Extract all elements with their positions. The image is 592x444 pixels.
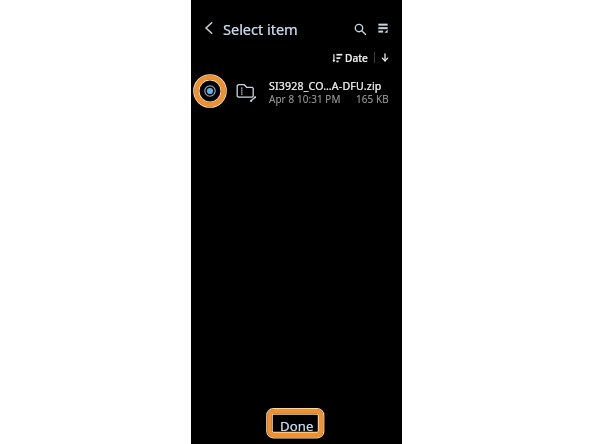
other: Selected	[188, 69, 232, 111]
button[interactable]: Search	[346, 15, 372, 41]
staticText: 165 KB	[356, 92, 389, 105]
button[interactable]: Selected	[191, 70, 402, 112]
staticText: Date	[345, 51, 368, 65]
staticText: SI3928_CO…A-DFU.zip	[269, 79, 382, 93]
staticText: Apr 8 10:31 PM	[269, 92, 341, 105]
button[interactable]: More options	[370, 15, 396, 41]
button[interactable]: Select item	[223, 19, 298, 39]
staticText: Select item	[223, 19, 298, 39]
button[interactable]: Date	[345, 51, 368, 65]
button[interactable]: Sort direction descending	[374, 47, 396, 69]
button[interactable]: Navigate up	[197, 16, 221, 40]
button[interactable]: Sort by	[327, 47, 349, 69]
staticText: Done	[280, 417, 314, 435]
button[interactable]: Done	[262, 404, 329, 443]
